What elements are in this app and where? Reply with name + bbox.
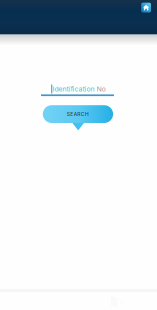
staticText: SEARCH — [67, 111, 89, 117]
button[interactable]: SEARCH — [43, 105, 113, 130]
button[interactable]: Home — [141, 3, 151, 12]
staticText: Identification No — [53, 85, 106, 93]
